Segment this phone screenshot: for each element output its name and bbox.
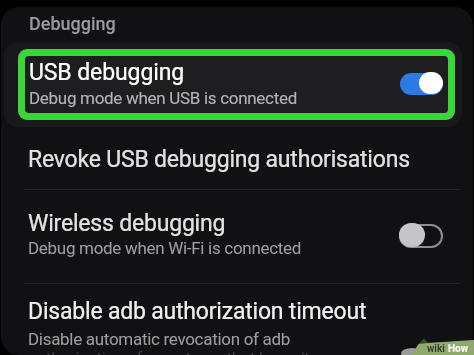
staticText: wiki (427, 343, 445, 355)
button[interactable] (400, 73, 443, 95)
staticText: Debugging (29, 13, 116, 34)
staticText: Revoke USB debugging authorisations (28, 146, 410, 173)
button[interactable]: Wireless debugging (0, 190, 474, 282)
button[interactable] (399, 224, 443, 248)
staticText: Debug mode when USB is connected (29, 88, 297, 108)
button[interactable]: Disable adb authorization timeout (0, 284, 474, 350)
button[interactable]: Revoke USB debugging authorisations (0, 128, 474, 189)
staticText: authorisations for systems that haven't (28, 348, 310, 355)
staticText: How (448, 343, 469, 355)
staticText: Debug mode when Wi-Fi is connected (28, 238, 302, 258)
staticText: Disable adb authorization timeout (28, 298, 367, 325)
staticText: USB debugging (29, 59, 185, 86)
staticText: Disable automatic revocation of adb (28, 329, 291, 349)
button[interactable]: USB debugging (18, 49, 455, 120)
staticText: Wireless debugging (28, 210, 226, 237)
